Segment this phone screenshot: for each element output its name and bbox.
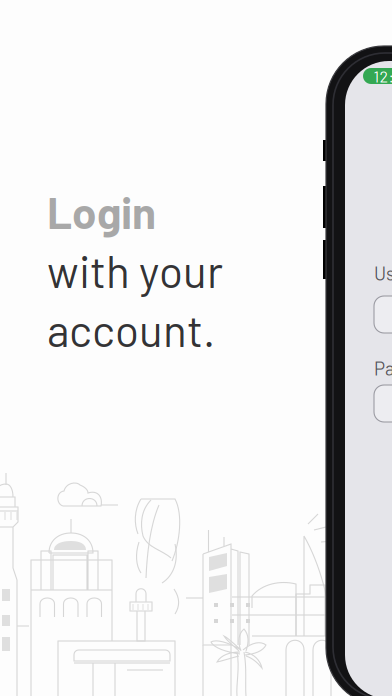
staticText: Password — [374, 357, 392, 379]
staticText: Login — [47, 185, 156, 238]
staticText: Username — [374, 262, 392, 284]
staticText: account. — [47, 303, 215, 356]
staticText: 12:34 — [373, 66, 392, 86]
button[interactable]: Password field — [374, 385, 392, 422]
staticText: with your — [47, 244, 223, 297]
button[interactable]: Username field — [374, 296, 392, 333]
